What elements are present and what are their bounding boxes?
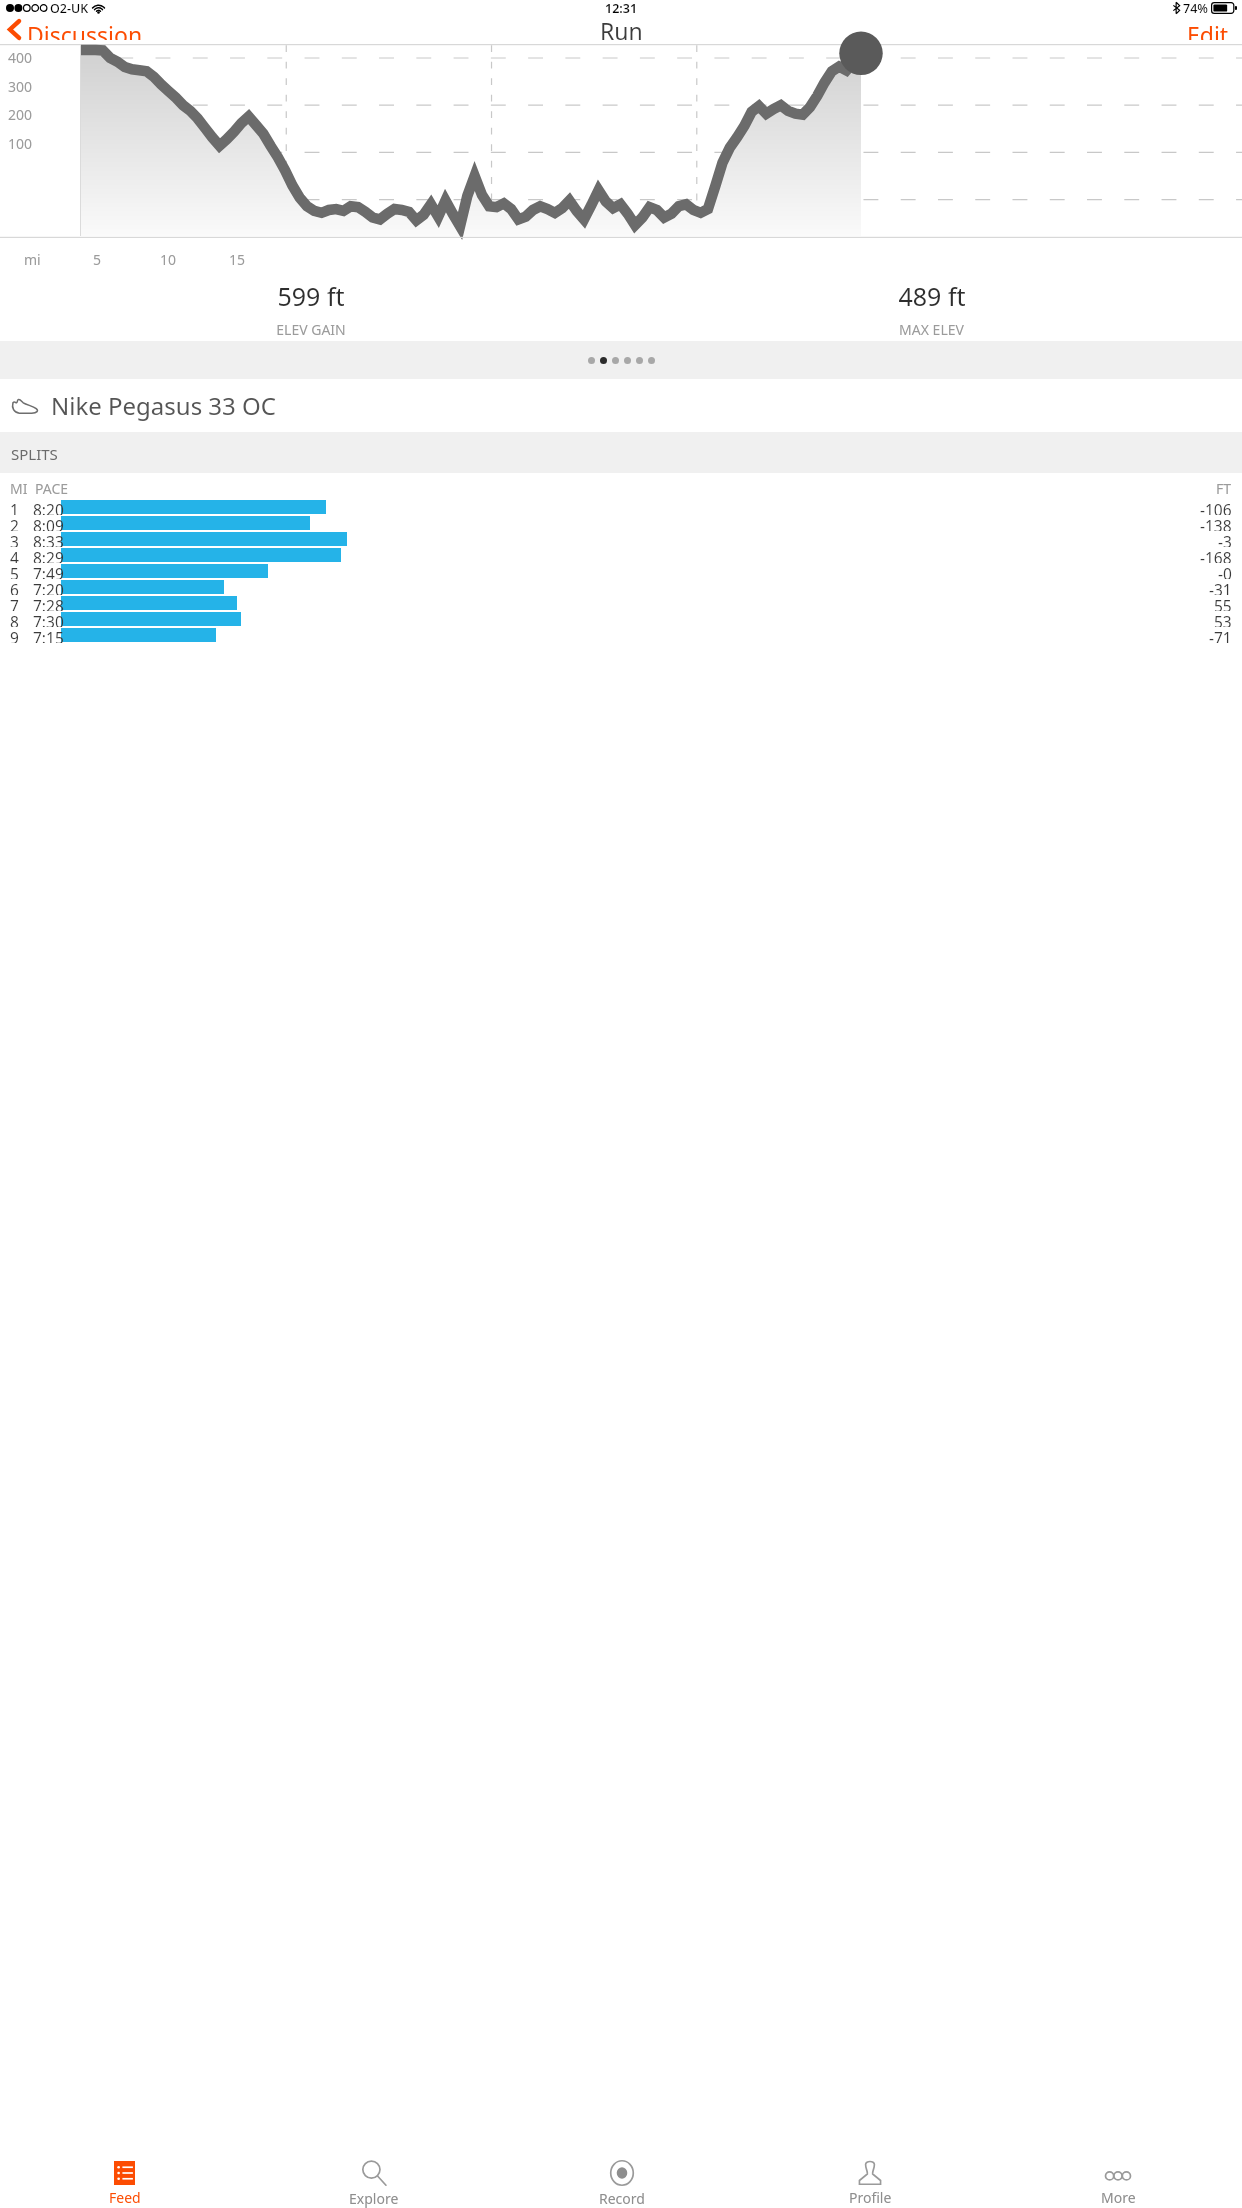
- button[interactable]: 7: [0, 595, 1242, 611]
- staticText: 7:20: [33, 579, 64, 595]
- staticText: 8:33: [33, 531, 64, 547]
- staticText: 7:15: [33, 627, 64, 643]
- staticText: 7: [10, 595, 19, 611]
- staticText: 7:28: [33, 595, 64, 611]
- button[interactable]: Edit: [1174, 15, 1242, 44]
- button[interactable]: More: [994, 2159, 1242, 2208]
- staticText: 15: [229, 250, 246, 269]
- button[interactable]: 489 ft: [621, 277, 1242, 341]
- staticText: MI: [10, 479, 28, 498]
- staticText: 9: [10, 627, 19, 643]
- button[interactable]: Nike Pegasus 33 OC: [0, 379, 1242, 432]
- staticText: 12:31: [605, 0, 638, 15]
- staticText: mi: [24, 250, 41, 269]
- staticText: 8:20: [33, 499, 64, 515]
- button[interactable]: Discussion: [0, 15, 153, 44]
- staticText: Run: [600, 15, 643, 44]
- button[interactable]: Explore: [249, 2159, 498, 2208]
- button[interactable]: 2: [0, 515, 1242, 531]
- button[interactable]: 8: [0, 611, 1242, 627]
- staticText: Record: [599, 2189, 645, 2208]
- button[interactable]: 3: [0, 531, 1242, 547]
- button[interactable]: 599 ft: [0, 277, 621, 341]
- staticText: -138: [1200, 515, 1232, 531]
- button[interactable]: 6: [0, 579, 1242, 595]
- staticText: PACE: [35, 479, 69, 498]
- staticText: 7:30: [33, 611, 64, 627]
- staticText: 200: [8, 105, 33, 124]
- staticText: 4: [10, 547, 19, 563]
- staticText: 8:09: [33, 515, 64, 531]
- staticText: MAX ELEV: [899, 320, 964, 339]
- staticText: 10: [160, 250, 177, 269]
- staticText: 7:49: [33, 563, 64, 579]
- staticText: More: [1101, 2188, 1136, 2207]
- staticText: 599 ft: [277, 279, 345, 313]
- staticText: 5: [10, 563, 19, 579]
- staticText: -106: [1200, 499, 1232, 515]
- button[interactable]: Record: [498, 2159, 746, 2208]
- staticText: O2-UK: [50, 0, 89, 15]
- staticText: Profile: [849, 2188, 892, 2207]
- staticText: 6: [10, 579, 19, 595]
- button[interactable]: Profile: [746, 2159, 994, 2208]
- staticText: -0: [1218, 563, 1232, 579]
- button[interactable]: 5: [0, 563, 1242, 579]
- staticText: 53: [1214, 611, 1232, 627]
- staticText: Feed: [109, 2188, 141, 2207]
- staticText: 3: [10, 531, 19, 547]
- staticText: -168: [1200, 547, 1232, 563]
- staticText: ELEV GAIN: [276, 320, 346, 339]
- staticText: FT: [1216, 479, 1232, 498]
- staticText: 8: [10, 611, 19, 627]
- staticText: Nike Pegasus 33 OC: [51, 389, 276, 422]
- staticText: -31: [1209, 579, 1232, 595]
- staticText: Explore: [349, 2189, 399, 2208]
- button[interactable]: Feed: [0, 2159, 249, 2208]
- staticText: -3: [1218, 531, 1232, 547]
- staticText: SPLITS: [11, 444, 58, 464]
- button[interactable]: 4: [0, 547, 1242, 563]
- staticText: 5: [93, 250, 102, 269]
- staticText: -71: [1209, 627, 1232, 643]
- staticText: 100: [8, 134, 33, 153]
- staticText: 1: [10, 499, 19, 515]
- staticText: 400: [8, 48, 33, 67]
- staticText: 489 ft: [898, 279, 966, 313]
- staticText: 74%: [1183, 0, 1208, 15]
- staticText: 8:29: [33, 547, 64, 563]
- button[interactable]: 9: [0, 627, 1242, 643]
- button[interactable]: 1: [0, 499, 1242, 515]
- staticText: 300: [8, 77, 33, 96]
- staticText: 55: [1214, 595, 1232, 611]
- staticText: Discussion: [27, 19, 143, 40]
- staticText: 2: [10, 515, 19, 531]
